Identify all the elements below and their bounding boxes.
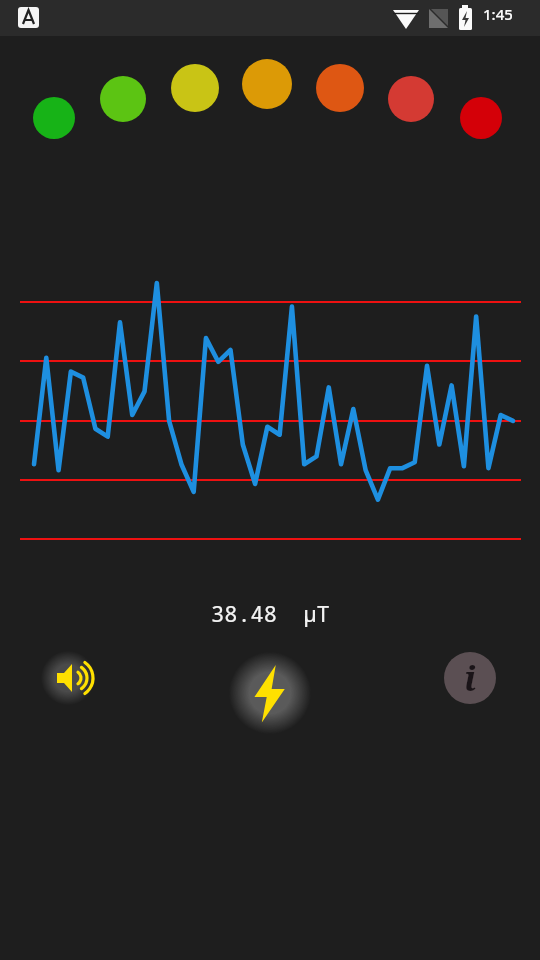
button[interactable]: Sound — [41, 651, 95, 705]
button[interactable]: Info — [443, 651, 497, 705]
staticText: i — [464, 655, 477, 701]
staticText: 1:45 — [483, 4, 513, 24]
staticText: 38.48 µT — [211, 598, 330, 628]
button[interactable]: Measure — [229, 652, 311, 734]
